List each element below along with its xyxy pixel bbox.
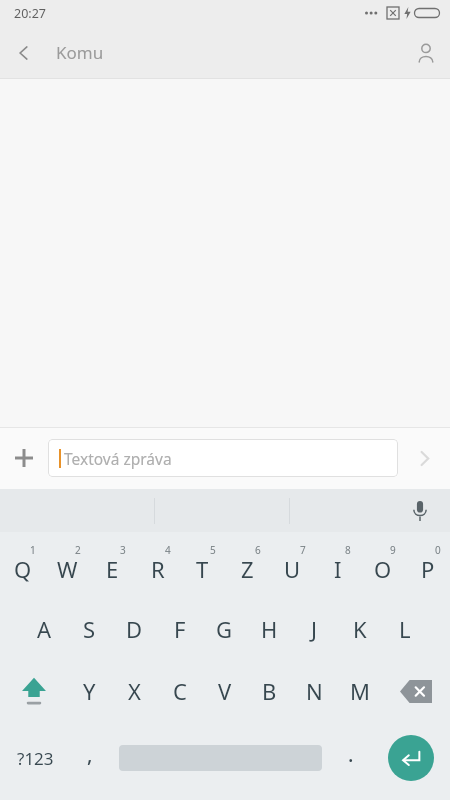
button[interactable]: Back — [0, 29, 48, 77]
staticText: D — [126, 614, 143, 644]
staticText: 8 — [345, 543, 351, 557]
button[interactable]: Contacts — [402, 29, 450, 77]
button[interactable]: L — [382, 598, 427, 660]
button[interactable]: M — [337, 660, 382, 722]
button[interactable]: G — [202, 598, 247, 660]
staticText: F — [174, 614, 186, 644]
staticText: 4 — [165, 543, 171, 557]
staticText: O — [374, 554, 392, 584]
staticText: L — [399, 614, 411, 644]
staticText: W — [57, 554, 78, 584]
button[interactable]: K — [337, 598, 382, 660]
staticText: Z — [241, 554, 254, 584]
button[interactable]: Shift — [0, 660, 67, 722]
staticText: P — [421, 554, 435, 584]
staticText: G — [216, 614, 233, 644]
staticText: 0 — [435, 543, 441, 557]
button[interactable]: Add attachment — [0, 434, 48, 482]
staticText: 5 — [210, 543, 216, 557]
staticText: N — [306, 676, 323, 706]
button[interactable]: A — [22, 598, 67, 660]
button[interactable]: 5 — [180, 532, 225, 598]
button[interactable]: 1 — [0, 532, 45, 598]
staticText: Textová zpráva — [64, 448, 172, 469]
button[interactable]: J — [292, 598, 337, 660]
staticText: U — [284, 554, 301, 584]
staticText: 1 — [30, 543, 36, 557]
button[interactable]: . — [331, 722, 371, 794]
staticText: X — [128, 676, 141, 706]
staticText: Komu — [56, 41, 104, 64]
button[interactable]: , — [70, 722, 110, 794]
button[interactable]: C — [157, 660, 202, 722]
staticText: 7 — [300, 543, 306, 557]
button[interactable]: 6 — [225, 532, 270, 598]
staticText: S — [83, 614, 96, 644]
button[interactable]: 8 — [315, 532, 360, 598]
button[interactable]: Textová zpráva — [48, 439, 398, 477]
staticText: T — [196, 554, 209, 584]
staticText: B — [262, 676, 277, 706]
staticText: Q — [14, 554, 32, 584]
button[interactable]: X — [112, 660, 157, 722]
staticText: Y — [83, 676, 96, 706]
button[interactable]: Backspace — [382, 660, 450, 722]
button[interactable]: S — [67, 598, 112, 660]
button[interactable]: Send — [398, 432, 450, 484]
staticText: 9 — [390, 543, 396, 557]
staticText: , — [87, 741, 93, 768]
staticText: ?123 — [17, 747, 54, 770]
button[interactable]: 3 — [90, 532, 135, 598]
button[interactable]: Space — [110, 722, 331, 794]
button[interactable]: D — [112, 598, 157, 660]
button[interactable]: 4 — [135, 532, 180, 598]
button[interactable]: 2 — [45, 532, 90, 598]
button[interactable]: 9 — [360, 532, 405, 598]
staticText: E — [106, 554, 119, 584]
staticText: I — [334, 554, 342, 584]
button[interactable]: 7 — [270, 532, 315, 598]
button[interactable]: B — [247, 660, 292, 722]
staticText: 3 — [120, 543, 126, 557]
button[interactable]: N — [292, 660, 337, 722]
button[interactable]: ?123 — [0, 722, 70, 794]
staticText: R — [151, 554, 165, 584]
button[interactable]: 0 — [405, 532, 450, 598]
button[interactable]: Y — [67, 660, 112, 722]
button[interactable]: F — [157, 598, 202, 660]
staticText: H — [261, 614, 278, 644]
staticText: 20:27 — [14, 5, 46, 22]
staticText: V — [218, 676, 232, 706]
staticText: A — [37, 614, 52, 644]
staticText: . — [348, 741, 354, 768]
button[interactable]: Voice input — [402, 493, 438, 529]
staticText: 6 — [255, 543, 261, 557]
staticText: C — [173, 676, 187, 706]
staticText: J — [311, 614, 318, 644]
staticText: 2 — [75, 543, 81, 557]
staticText: K — [353, 614, 367, 644]
button[interactable]: V — [202, 660, 247, 722]
button[interactable]: H — [247, 598, 292, 660]
staticText: M — [350, 676, 370, 706]
button[interactable]: Enter — [371, 722, 450, 794]
